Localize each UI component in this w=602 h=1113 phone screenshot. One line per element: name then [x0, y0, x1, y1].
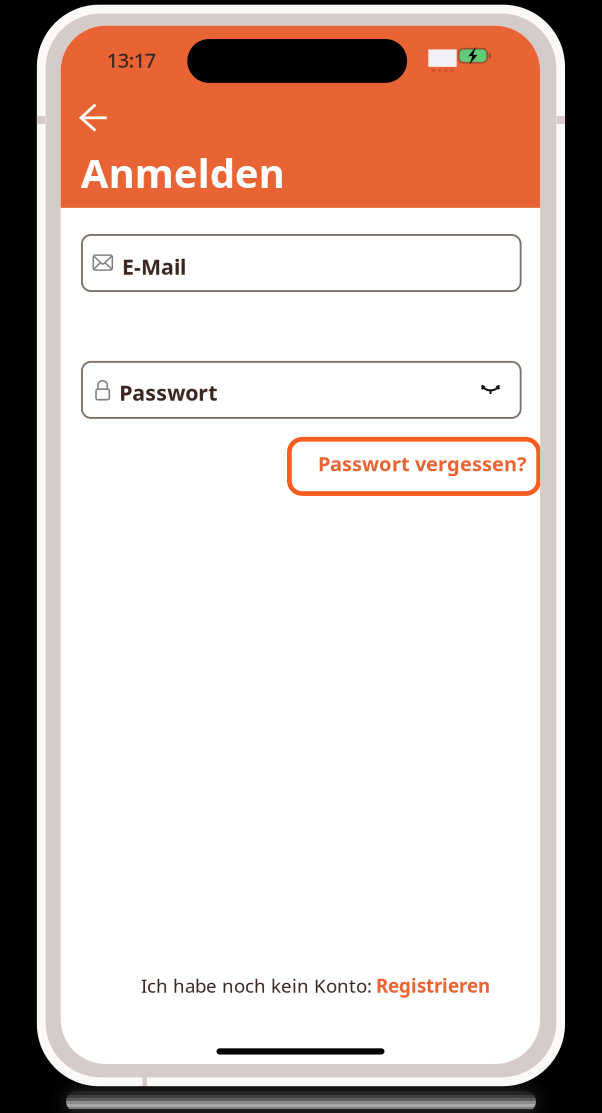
- button[interactable]: Passwort vergessen?: [287, 437, 541, 496]
- staticText: Ich habe noch kein Konto:: [141, 973, 372, 998]
- staticText: Registrieren: [376, 973, 490, 998]
- staticText: Anmelden: [81, 146, 285, 199]
- staticText: Passwort: [119, 378, 217, 406]
- button[interactable]: Passwort anzeigen: [476, 375, 506, 405]
- staticText: Passwort vergessen?: [318, 450, 527, 477]
- staticText: 13:17: [107, 47, 156, 73]
- button[interactable]: Registrieren: [376, 973, 490, 998]
- staticText: E-Mail: [122, 252, 186, 281]
- button[interactable]: Zurück: [72, 96, 116, 140]
